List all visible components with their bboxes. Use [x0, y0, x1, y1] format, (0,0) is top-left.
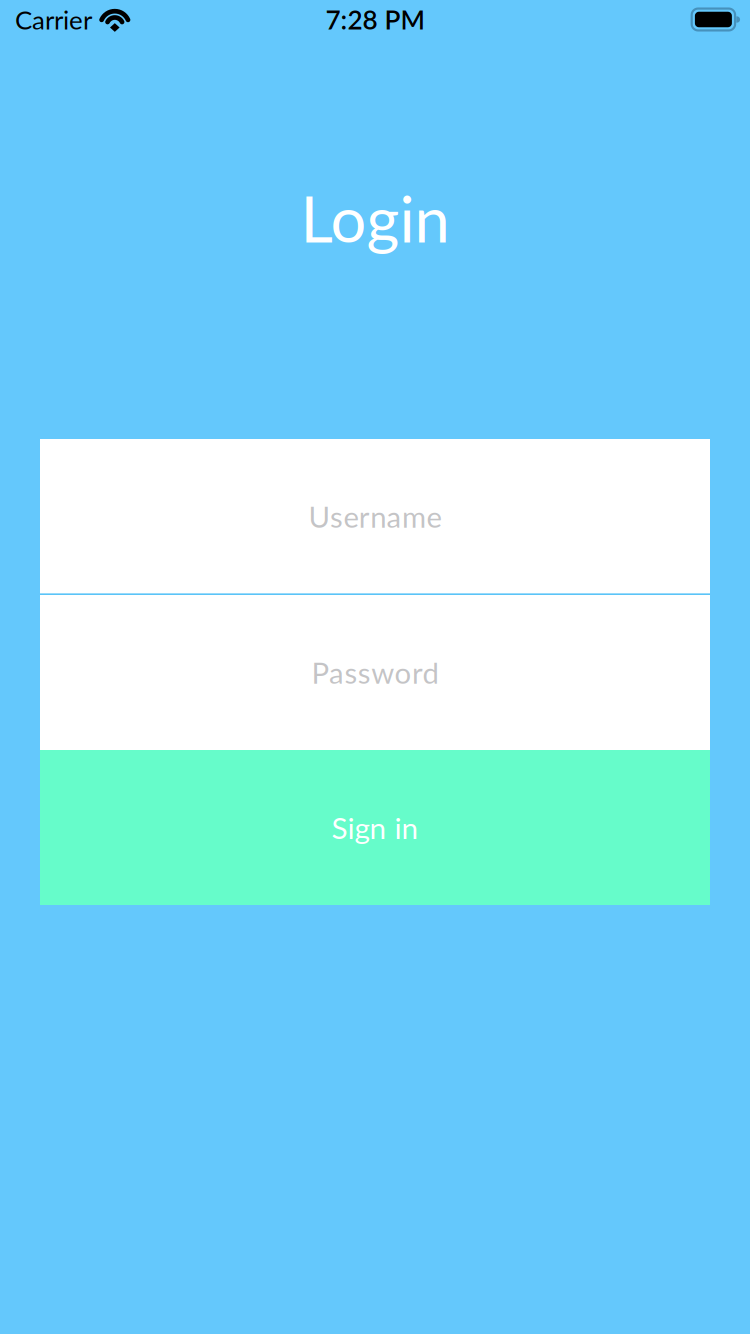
staticText: Username — [309, 499, 441, 534]
button[interactable]: Password — [40, 595, 710, 750]
staticText: Login — [300, 180, 449, 256]
staticText: 7:28 PM — [325, 4, 424, 35]
button[interactable]: Sign in — [40, 750, 710, 905]
staticText: Password — [312, 655, 438, 690]
staticText: Carrier — [15, 4, 92, 35]
staticText: Sign in — [331, 810, 418, 845]
button[interactable]: Username — [40, 439, 710, 594]
